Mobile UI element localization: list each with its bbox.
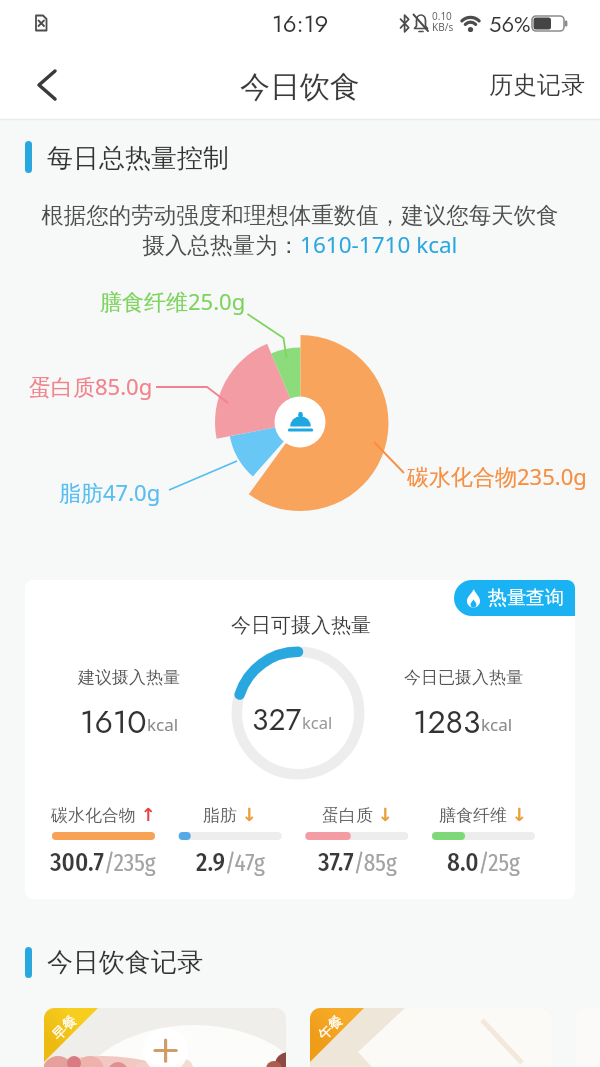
staticText: 膳食纤维 ↓	[439, 803, 527, 826]
staticText: 327	[252, 698, 302, 741]
staticText: 今日已摄入热量	[404, 667, 523, 688]
staticText: 0.10	[432, 9, 452, 23]
staticText: 2.9/47g	[196, 848, 265, 878]
staticText: 碳水化合物 ↑	[51, 803, 156, 826]
staticText: 300.7/235g	[50, 848, 156, 878]
staticText: 午餐	[315, 1012, 347, 1044]
staticText: 今日饮食	[240, 68, 360, 106]
staticText: 热量查询	[488, 586, 564, 610]
staticText: 16:19	[272, 6, 329, 41]
staticText: 膳食纤维25.0g	[100, 286, 246, 316]
button[interactable]: 早餐	[44, 1008, 286, 1067]
staticText: kcal	[481, 713, 513, 736]
staticText: kcal	[147, 713, 179, 736]
staticText: kcal	[302, 711, 333, 733]
staticText: 碳水化合物235.0g	[407, 461, 587, 491]
staticText: 建议摄入热量	[78, 667, 180, 688]
staticText: 今日饮食记录	[47, 946, 203, 979]
staticText: 今日可摄入热量	[231, 613, 371, 638]
staticText: KB/s	[432, 20, 454, 34]
staticText: 蛋白质85.0g	[29, 371, 153, 401]
staticText: 1610	[80, 699, 147, 745]
button[interactable]: 历史记录	[489, 70, 585, 100]
staticText: 蛋白质 ↓	[322, 803, 393, 826]
staticText: 脂肪 ↓	[203, 803, 257, 826]
staticText: 脂肪47.0g	[59, 477, 161, 507]
button[interactable]: 热量查询	[454, 580, 575, 616]
staticText: 37.7/85g	[318, 848, 397, 878]
staticText: 每日总热量控制	[47, 142, 229, 175]
staticText: 早餐	[49, 1012, 81, 1044]
button[interactable]	[30, 60, 70, 110]
button[interactable]: 午餐	[310, 1008, 552, 1067]
staticText: 根据您的劳动强度和理想体重数值，建议您每天饮食 摄入总热量为：1610-1710…	[41, 201, 559, 260]
staticText: 8.0/25g	[447, 848, 520, 878]
staticText: 1283	[413, 699, 481, 745]
staticText: 56%	[489, 8, 531, 40]
